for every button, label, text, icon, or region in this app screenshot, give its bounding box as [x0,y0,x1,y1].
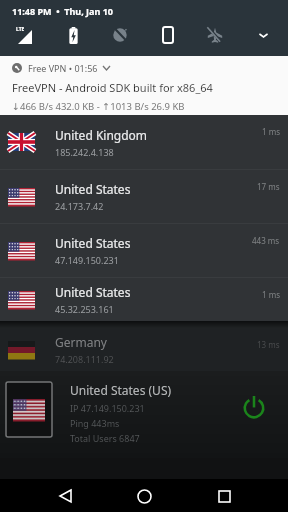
staticText: 443 ms [252,235,280,246]
staticText: United States [55,181,131,197]
staticText: LTE [16,26,25,33]
staticText: United States (US) [70,382,172,398]
staticText: 11:48 PM • Thu, Jan 10 [12,5,113,17]
button[interactable]: United States [0,224,288,277]
button[interactable] [64,26,82,44]
staticText: 185.242.4.138 [55,146,114,158]
button[interactable]: United States (US) [0,371,288,458]
staticText: 17 ms [257,181,280,192]
staticText: United States [55,284,131,300]
staticText: 1 ms [262,289,280,300]
staticText: Ping 443ms [70,417,120,429]
staticText: Total Users 6847 [70,432,140,444]
staticText: 13 ms [257,339,280,350]
staticText: ↓466 B/s 432.0 KB - ↑1013 B/s 26.9 KB [12,100,185,113]
button[interactable] [129,481,159,511]
button[interactable]: United States [0,278,288,321]
button[interactable] [254,26,272,44]
button[interactable] [237,390,271,424]
staticText: Germany [55,334,107,350]
button[interactable] [50,481,80,511]
button[interactable]: United Kingdom [0,115,288,169]
button[interactable]: Germany [0,328,288,371]
button[interactable] [159,26,177,44]
button[interactable]: United States [0,170,288,223]
button[interactable]: Free VPN • 01:56 [0,56,288,115]
button[interactable] [111,26,129,44]
staticText: 1 ms [262,126,280,137]
button[interactable]: LTE [16,26,34,44]
staticText: FreeVPN - Android SDK built for x86_64 [12,80,213,95]
staticText: Free VPN • 01:56 [28,62,98,74]
staticText: 45.32.253.161 [55,303,114,315]
staticText: IP 47.149.150.231 [70,402,145,414]
button[interactable] [206,26,224,44]
staticText: 24.173.7.42 [55,200,104,212]
staticText: 74.208.111.92 [55,353,114,365]
staticText: 47.149.150.231 [55,254,119,266]
staticText: United States [55,235,131,251]
button[interactable] [209,481,239,511]
staticText: United Kingdom [55,127,148,143]
